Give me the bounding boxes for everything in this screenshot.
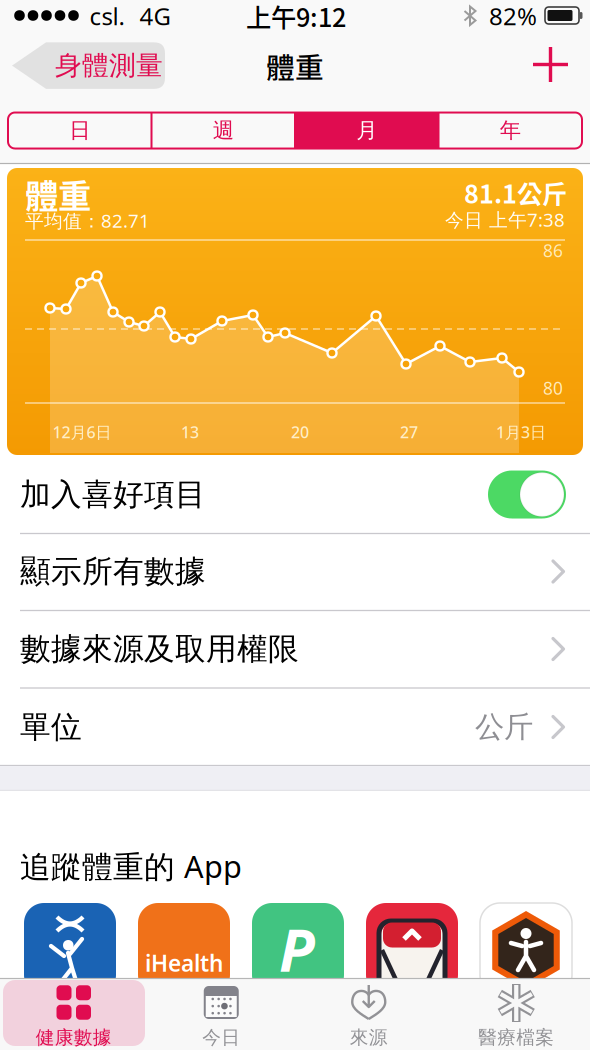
button[interactable]: 單位: [0, 688, 590, 765]
button[interactable]: 顯示所有數據: [0, 533, 590, 610]
staticText: 4G: [139, 0, 170, 32]
button[interactable]: 新增數據: [533, 47, 568, 82]
button[interactable]: 年: [438, 112, 582, 148]
staticText: P: [279, 910, 315, 988]
staticText: 年: [500, 117, 521, 144]
button[interactable]: 加入喜好項目: [0, 456, 590, 533]
staticText: 平均值：82.71: [25, 208, 150, 233]
staticText: 82%: [489, 0, 537, 32]
button[interactable]: 來源: [295, 978, 442, 1050]
button[interactable]: 日: [8, 112, 151, 148]
button[interactable]: 返回 身體測量: [12, 42, 165, 89]
staticText: 12月6日: [52, 421, 111, 443]
staticText: iHealth: [145, 948, 223, 978]
staticText: 體重: [266, 45, 324, 87]
button[interactable]: iHealth App: [138, 903, 230, 995]
staticText: 數據來源及取用權限: [20, 630, 299, 668]
button[interactable]: 月: [295, 112, 438, 148]
staticText: 1月3日: [496, 421, 546, 443]
staticText: 顯示所有數據: [20, 553, 206, 590]
button[interactable]: 健身 App: [480, 903, 572, 995]
staticText: 月: [356, 117, 377, 144]
staticText: 單位: [20, 708, 82, 746]
staticText: 公斤: [475, 709, 533, 745]
staticText: 體重: [25, 170, 91, 218]
staticText: 身體測量: [55, 49, 163, 82]
staticText: 上午9:12: [246, 0, 346, 34]
button[interactable]: Record App: [24, 903, 116, 995]
staticText: 醫療檔案: [478, 1026, 554, 1049]
staticText: 加入喜好項目: [20, 476, 206, 513]
staticText: 追蹤體重的 App: [20, 846, 242, 886]
staticText: 週: [213, 117, 234, 144]
staticText: 20: [291, 421, 309, 443]
staticText: 86: [543, 239, 563, 262]
button[interactable]: 健康數據: [0, 978, 147, 1050]
button[interactable]: 數據來源及取用權限: [0, 610, 590, 687]
staticText: 今日 上午7:38: [445, 207, 565, 232]
button[interactable]: 體重計 App: [366, 903, 458, 995]
staticText: 13: [181, 421, 199, 443]
button[interactable]: 今日: [147, 978, 295, 1050]
staticText: 80: [543, 376, 563, 399]
staticText: 日: [69, 117, 90, 144]
staticText: 81.1公斤: [464, 174, 567, 211]
button[interactable]: 醫療檔案: [442, 978, 590, 1050]
staticText: 健康數據: [36, 1026, 112, 1049]
staticText: 來源: [350, 1026, 388, 1049]
staticText: csl.: [89, 0, 124, 32]
button[interactable]: Pacer App: [252, 903, 344, 995]
button[interactable]: 週: [151, 112, 295, 148]
staticText: 27: [400, 421, 418, 443]
staticText: 今日: [202, 1026, 240, 1049]
